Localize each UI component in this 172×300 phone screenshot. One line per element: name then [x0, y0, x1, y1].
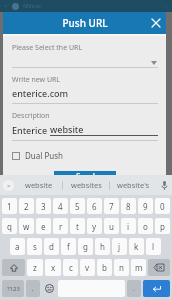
staticText: m: [135, 262, 143, 273]
button[interactable]: Close: [146, 13, 166, 33]
button[interactable]: d: [44, 238, 59, 255]
button[interactable]: 2: [19, 198, 34, 214]
staticText: website: [25, 180, 53, 190]
button[interactable]: Send: [54, 171, 116, 175]
button[interactable]: websites: [63, 175, 109, 195]
staticText: Please Select the URL: [12, 43, 83, 53]
staticText: ,: [32, 285, 34, 293]
staticText: b: [102, 262, 107, 273]
staticText: Description: [12, 111, 50, 121]
button[interactable]: c: [63, 259, 78, 276]
button[interactable]: m: [131, 259, 146, 276]
staticText: c: [69, 262, 73, 273]
button[interactable]: 7: [104, 198, 119, 214]
button[interactable]: k: [129, 238, 144, 255]
button[interactable]: w: [19, 218, 34, 234]
staticText: >: [7, 182, 11, 190]
staticText: 7: [109, 201, 114, 212]
button[interactable]: g: [78, 238, 93, 255]
button[interactable]: i: [121, 218, 136, 234]
staticText: 9: [143, 201, 148, 212]
staticText: Write new URL: [12, 75, 61, 85]
button[interactable]: s: [27, 238, 42, 255]
button[interactable]: Emoji: [42, 280, 56, 297]
staticText: a: [15, 241, 20, 252]
staticText: 1: [7, 201, 12, 212]
staticText: y: [92, 221, 97, 232]
staticText: j: [118, 241, 121, 252]
button[interactable]: Dual Push: [12, 149, 63, 162]
staticText: Send: [76, 171, 95, 175]
button[interactable]: j: [112, 238, 127, 255]
button[interactable]: e: [36, 218, 51, 234]
staticText: w: [23, 221, 30, 232]
staticText: t: [76, 221, 79, 232]
button[interactable]: q: [2, 218, 17, 234]
button[interactable]: More suggestions: [0, 175, 16, 195]
button[interactable]: x: [45, 259, 61, 276]
button[interactable]: 4: [53, 198, 68, 214]
staticText: 5: [75, 201, 80, 212]
button[interactable]: 5: [70, 198, 85, 214]
staticText: 6: [92, 201, 97, 212]
staticText: k: [134, 241, 139, 252]
button[interactable]: y: [87, 218, 102, 234]
staticText: n: [119, 262, 124, 273]
staticText: 8: [126, 201, 131, 212]
staticText: .: [133, 285, 135, 293]
button[interactable]: 1: [2, 198, 17, 214]
button[interactable]: n: [114, 259, 129, 276]
staticText: x: [51, 262, 56, 273]
staticText: Milsos: [23, 2, 41, 10]
button[interactable]: r: [53, 218, 68, 234]
button[interactable]: Enter: [143, 280, 170, 297]
staticText: e: [41, 221, 46, 232]
button[interactable]: Please Select the URL: [12, 43, 158, 68]
button[interactable]: ?123: [2, 280, 24, 297]
staticText: Push URL: [62, 16, 108, 30]
button[interactable]: p: [155, 218, 170, 234]
staticText: u: [109, 221, 114, 232]
staticText: <: [4, 2, 8, 10]
staticText: z: [33, 262, 37, 273]
button[interactable]: 0: [155, 198, 170, 214]
button[interactable]: h: [95, 238, 110, 255]
staticText: s: [33, 241, 37, 252]
staticText: Enterice: [12, 124, 50, 136]
button[interactable]: Shift: [2, 259, 25, 276]
button[interactable]: ,: [26, 280, 40, 297]
button[interactable]: o: [138, 218, 153, 234]
staticText: d: [49, 241, 54, 252]
button[interactable]: l: [146, 238, 161, 255]
button[interactable]: website: [16, 175, 62, 195]
button[interactable]: b: [97, 259, 112, 276]
button[interactable]: Write new URL: [12, 75, 158, 104]
staticText: f: [67, 241, 70, 252]
staticText: l: [152, 241, 155, 252]
staticText: 3: [41, 201, 46, 212]
button[interactable]: 3: [36, 198, 51, 214]
button[interactable]: Description: [12, 111, 158, 141]
button[interactable]: 9: [138, 198, 153, 214]
button[interactable]: Voice input: [156, 175, 172, 195]
button[interactable]: website's: [110, 175, 156, 195]
staticText: q: [7, 221, 12, 232]
button[interactable]: u: [104, 218, 119, 234]
staticText: g: [83, 241, 88, 252]
staticText: website: [50, 123, 84, 135]
staticText: enterice.com: [12, 87, 69, 99]
staticText: Dual Push: [25, 150, 63, 161]
button[interactable]: 8: [121, 198, 136, 214]
button[interactable]: .: [127, 280, 141, 297]
button[interactable]: a: [10, 238, 25, 255]
button[interactable]: Backspace: [148, 259, 170, 276]
button[interactable]: z: [27, 259, 43, 276]
button[interactable]: 6: [87, 198, 102, 214]
button[interactable]: t: [70, 218, 85, 234]
button[interactable]: v: [80, 259, 95, 276]
staticText: 0: [160, 201, 165, 212]
button[interactable]: f: [61, 238, 76, 255]
staticText: 4: [58, 201, 63, 212]
